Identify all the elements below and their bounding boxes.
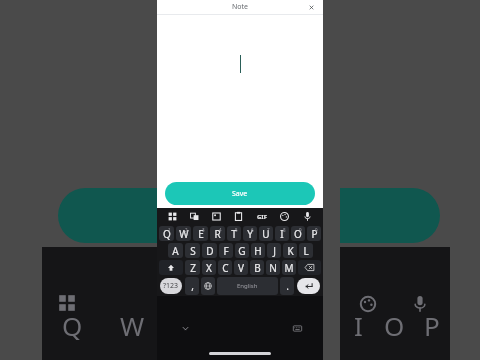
staticText: 4 — [219, 227, 222, 233]
staticText: G — [238, 244, 246, 258]
button[interactable]: English — [217, 277, 278, 295]
button[interactable]: , — [185, 277, 199, 295]
button[interactable]: K — [283, 243, 297, 258]
staticText: P — [424, 308, 440, 343]
staticText: 7 — [267, 227, 270, 233]
staticText: E — [198, 227, 204, 241]
button[interactable]: T — [227, 226, 241, 241]
button[interactable]: J — [267, 243, 281, 258]
staticText: J — [273, 244, 276, 258]
staticText: Z — [190, 261, 196, 275]
staticText: P — [311, 227, 318, 241]
button[interactable]: Stickers — [183, 208, 205, 225]
staticText: Q — [62, 308, 83, 343]
button[interactable]: . — [280, 277, 294, 295]
button[interactable]: S — [185, 243, 200, 258]
staticText: K — [287, 244, 294, 258]
button[interactable]: Hide keyboard — [177, 320, 193, 336]
button[interactable]: U — [259, 226, 273, 241]
button[interactable]: Shift — [159, 260, 183, 275]
button[interactable]: Menu — [161, 208, 183, 225]
button[interactable]: O — [291, 226, 305, 241]
button[interactable]: V — [234, 260, 248, 275]
staticText: 5 — [235, 227, 238, 233]
button[interactable]: Image — [205, 208, 227, 225]
staticText: F — [223, 244, 229, 258]
staticText: 0 — [315, 227, 318, 233]
button[interactable]: Q — [159, 226, 174, 241]
button[interactable]: N — [266, 260, 280, 275]
button[interactable]: F — [219, 243, 233, 258]
staticText: M — [284, 261, 294, 275]
button[interactable]: Y — [243, 226, 257, 241]
staticText: W — [120, 308, 145, 343]
staticText: Save — [232, 189, 248, 199]
staticText: ?123 — [163, 281, 179, 291]
staticText: 2 — [185, 227, 188, 233]
button[interactable]: Save — [165, 182, 315, 205]
staticText: X — [206, 261, 212, 275]
button[interactable]: L — [299, 243, 313, 258]
button[interactable]: Change language — [201, 277, 215, 295]
staticText: GIF — [257, 213, 267, 221]
button[interactable]: Clipboard — [227, 208, 250, 225]
button[interactable]: M — [282, 260, 296, 275]
button[interactable]: H — [251, 243, 265, 258]
button[interactable]: Themes — [273, 208, 296, 225]
staticText: B — [254, 261, 261, 275]
staticText: W — [179, 227, 189, 241]
button[interactable]: W — [176, 226, 191, 241]
staticText: 8 — [283, 227, 286, 233]
button[interactable]: Enter — [297, 278, 320, 294]
button[interactable]: ?123 — [160, 278, 182, 294]
staticText: 9 — [299, 227, 302, 233]
button[interactable]: Switch keyboard — [289, 320, 305, 336]
button[interactable]: X — [202, 260, 216, 275]
staticText: I — [354, 308, 363, 343]
button[interactable]: P — [307, 226, 321, 241]
button[interactable]: Backspace — [298, 260, 321, 275]
button[interactable]: B — [250, 260, 264, 275]
staticText: O — [294, 227, 302, 241]
staticText: 6 — [251, 227, 254, 233]
button[interactable]: E — [193, 226, 208, 241]
staticText: Y — [247, 227, 253, 241]
staticText: Note — [232, 2, 249, 12]
staticText: , — [191, 279, 194, 293]
staticText: . — [286, 279, 289, 293]
button[interactable]: D — [202, 243, 217, 258]
staticText: L — [303, 244, 309, 258]
staticText: I — [280, 227, 284, 241]
staticText: O — [384, 308, 405, 343]
button[interactable]: R — [210, 226, 225, 241]
button[interactable]: C — [218, 260, 232, 275]
staticText: T — [231, 227, 237, 241]
button[interactable]: Close — [305, 1, 317, 13]
button[interactable]: Voice input — [296, 208, 319, 225]
staticText: A — [172, 244, 179, 258]
staticText: H — [254, 244, 262, 258]
button[interactable]: I — [275, 226, 289, 241]
staticText: S — [190, 244, 196, 258]
staticText: C — [222, 261, 229, 275]
button[interactable]: G — [235, 243, 249, 258]
staticText: 1 — [168, 227, 171, 233]
staticText: 3 — [202, 227, 205, 233]
staticText: English — [237, 282, 258, 290]
staticText: R — [214, 227, 221, 241]
button[interactable]: Z — [185, 260, 200, 275]
staticText: N — [269, 261, 277, 275]
staticText: Q — [163, 227, 171, 241]
staticText: D — [206, 244, 214, 258]
button[interactable]: A — [168, 243, 183, 258]
button[interactable]: GIF — [250, 208, 273, 225]
staticText: V — [238, 261, 244, 275]
staticText: U — [262, 227, 270, 241]
